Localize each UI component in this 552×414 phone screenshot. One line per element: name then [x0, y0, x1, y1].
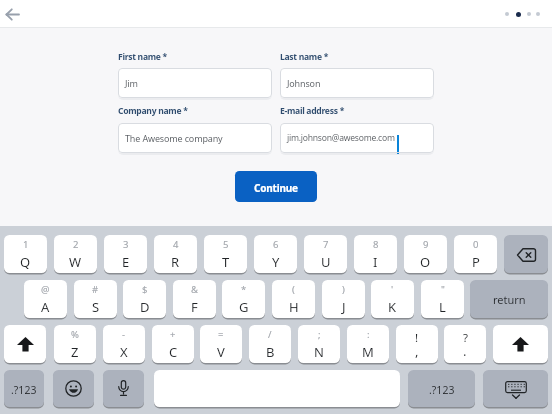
staticText: Company name *: [118, 105, 188, 117]
button[interactable]: ': [371, 280, 414, 318]
button[interactable]: ): [322, 280, 365, 318]
staticText: C: [169, 343, 178, 361]
button[interactable]: ?: [444, 325, 486, 363]
staticText: 5: [223, 238, 229, 251]
staticText: H: [289, 298, 299, 316]
button[interactable]: $: [123, 280, 166, 318]
button[interactable]: %: [54, 325, 96, 363]
button[interactable]: [4, 325, 46, 363]
button[interactable]: ;: [298, 325, 340, 363]
button[interactable]: ": [421, 280, 464, 318]
staticText: First name *: [118, 51, 167, 63]
button[interactable]: [483, 370, 548, 407]
button[interactable]: !: [396, 325, 438, 363]
staticText: F: [191, 298, 198, 316]
staticText: =: [218, 328, 224, 341]
button[interactable]: Jim: [118, 68, 272, 98]
button[interactable]: Continue: [235, 171, 317, 202]
staticText: .?123: [429, 383, 455, 397]
button[interactable]: [2, 4, 28, 26]
staticText: A: [41, 298, 50, 316]
staticText: E-mail address *: [280, 105, 344, 117]
button[interactable]: jim.johnson@awesome.com: [280, 123, 434, 153]
button[interactable]: [154, 370, 400, 407]
staticText: 7: [323, 238, 329, 251]
staticText: L: [439, 298, 446, 316]
staticText: ': [391, 283, 394, 296]
staticText: X: [120, 343, 128, 361]
staticText: W: [69, 253, 82, 271]
staticText: B: [266, 343, 275, 361]
staticText: V: [217, 343, 225, 361]
button[interactable]: 3: [104, 235, 147, 273]
staticText: N: [314, 343, 324, 361]
button[interactable]: &: [173, 280, 216, 318]
button[interactable]: .?123: [408, 370, 475, 407]
button[interactable]: 5: [204, 235, 247, 273]
staticText: T: [222, 253, 230, 271]
button[interactable]: 1: [4, 235, 47, 273]
staticText: Johnson: [287, 77, 321, 89]
staticText: 9: [423, 238, 429, 251]
staticText: ): [342, 283, 345, 296]
staticText: Q: [20, 253, 31, 271]
button[interactable]: /: [249, 325, 291, 363]
staticText: return: [493, 292, 526, 307]
button[interactable]: 0: [454, 235, 497, 273]
staticText: 6: [273, 238, 279, 251]
button[interactable]: (: [272, 280, 315, 318]
staticText: Last name *: [280, 51, 329, 63]
staticText: U: [321, 253, 331, 271]
staticText: 4: [173, 238, 179, 251]
staticText: jim.johnson@awesome.com: [287, 132, 395, 144]
button[interactable]: [103, 370, 144, 407]
button[interactable]: -: [103, 325, 145, 363]
staticText: ?: [463, 330, 468, 346]
button[interactable]: [493, 325, 548, 363]
staticText: E: [122, 253, 130, 271]
staticText: The Awesome company: [125, 132, 223, 144]
staticText: 8: [373, 238, 379, 251]
staticText: M: [362, 343, 374, 361]
button[interactable]: 2: [54, 235, 97, 273]
button[interactable]: =: [200, 325, 242, 363]
staticText: *: [241, 283, 247, 296]
button[interactable]: [53, 370, 94, 407]
staticText: $: [142, 283, 148, 296]
staticText: S: [92, 298, 100, 316]
staticText: /: [268, 328, 272, 341]
staticText: #: [92, 283, 99, 296]
staticText: 0: [473, 238, 479, 251]
staticText: 2: [73, 238, 79, 251]
button[interactable]: [504, 235, 548, 273]
button[interactable]: return: [470, 280, 548, 318]
button[interactable]: @: [24, 280, 67, 318]
staticText: Z: [71, 343, 79, 361]
staticText: G: [239, 298, 249, 316]
staticText: R: [171, 253, 180, 271]
button[interactable]: The Awesome company: [118, 123, 272, 153]
button[interactable]: 7: [304, 235, 347, 273]
button[interactable]: .?123: [4, 370, 44, 407]
staticText: @: [41, 283, 50, 296]
button[interactable]: 8: [354, 235, 397, 273]
staticText: !: [415, 330, 419, 346]
staticText: -: [122, 328, 126, 341]
button[interactable]: 6: [254, 235, 297, 273]
staticText: ": [441, 283, 445, 296]
staticText: 1: [23, 238, 29, 251]
staticText: +: [170, 328, 176, 341]
button[interactable]: #: [74, 280, 117, 318]
staticText: Jim: [125, 77, 138, 89]
staticText: .: [463, 342, 467, 360]
staticText: J: [342, 298, 346, 316]
staticText: I: [373, 253, 378, 271]
button[interactable]: Johnson: [280, 68, 434, 98]
button[interactable]: *: [222, 280, 265, 318]
button[interactable]: 4: [154, 235, 197, 273]
button[interactable]: :: [347, 325, 389, 363]
staticText: (: [292, 283, 295, 296]
button[interactable]: +: [152, 325, 194, 363]
staticText: :: [367, 328, 370, 341]
button[interactable]: 9: [404, 235, 447, 273]
